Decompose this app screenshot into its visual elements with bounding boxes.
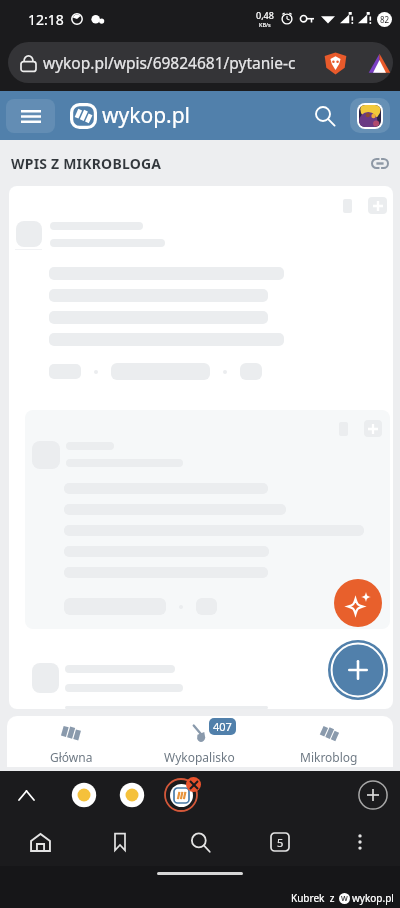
button[interactable]: Home <box>0 818 80 866</box>
staticText: Mikroblog <box>300 749 358 765</box>
button[interactable]: Search <box>308 99 342 133</box>
button[interactable]: Expand <box>12 781 40 809</box>
button[interactable]: Add post <box>328 640 388 700</box>
staticText: 5 <box>277 835 284 850</box>
staticText: WPIS Z MIKROBLOGA <box>11 154 162 173</box>
button[interactable]: Bookmarks <box>80 818 160 866</box>
button[interactable]: Główna <box>7 716 135 767</box>
button[interactable]: Profile <box>350 98 390 133</box>
button[interactable]: Playlist item <box>164 778 198 812</box>
button[interactable]: 407 <box>135 716 264 767</box>
button[interactable]: Add shortcut <box>358 780 388 810</box>
staticText: wykop.pl <box>352 891 394 905</box>
staticText: 0,48 <box>256 9 274 21</box>
staticText: 12:18 <box>28 10 64 29</box>
staticText: Wykopalisko <box>164 749 235 765</box>
button[interactable]: Brave Shields <box>319 47 351 79</box>
staticText: Kubrek z <box>291 891 335 905</box>
button[interactable]: Mikroblog <box>264 716 393 767</box>
staticText: wykop.pl/wpis/69824681/pytanie-c <box>43 52 296 73</box>
button[interactable]: Menu <box>6 99 55 133</box>
staticText: 407 <box>213 719 232 734</box>
staticText: KB/s <box>259 21 271 28</box>
button[interactable]: More <box>320 818 400 866</box>
button[interactable]: Suggestion <box>119 782 145 808</box>
button[interactable]: Brave Rewards <box>363 47 395 79</box>
button[interactable]: Tabs <box>240 818 320 866</box>
button[interactable] <box>8 42 393 83</box>
button[interactable]: wykop.pl <box>70 101 191 130</box>
button[interactable]: Copy link <box>366 149 394 177</box>
staticText: wykop.pl <box>102 101 191 130</box>
staticText: W <box>341 894 348 904</box>
staticText: Główna <box>50 749 93 765</box>
button[interactable]: AI assistant <box>334 579 382 627</box>
button[interactable]: Suggestion <box>71 782 97 808</box>
staticText: 82 <box>380 14 390 25</box>
button[interactable]: Search <box>160 818 240 866</box>
